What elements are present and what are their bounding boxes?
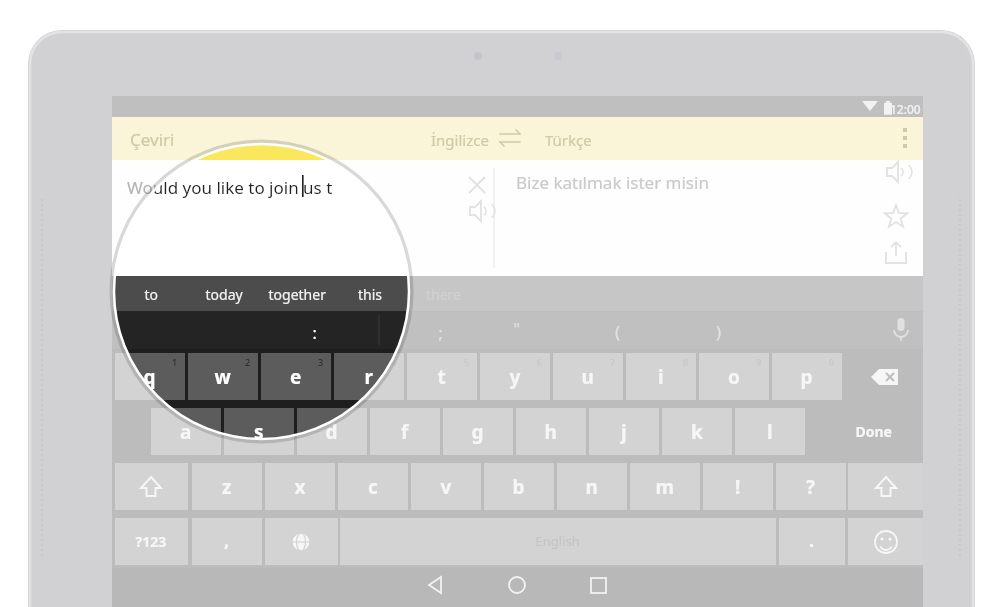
button[interactable]: Voice input (862, 311, 923, 349)
button[interactable]: Çeviri (118, 118, 230, 160)
button[interactable]: Save to phrasebook (877, 198, 917, 236)
button[interactable]: Listen to translation (877, 162, 917, 200)
button[interactable]: Done (825, 408, 923, 455)
button[interactable]: Swap languages (506, 118, 538, 160)
button[interactable]: Share translation (877, 234, 917, 272)
button[interactable]: to (115, 277, 188, 310)
button[interactable]: Home (498, 572, 536, 604)
button[interactable]: Back (416, 572, 454, 604)
button[interactable]: today (188, 277, 261, 310)
button[interactable]: More options (884, 118, 924, 160)
button[interactable]: Target language Turkish (538, 118, 620, 160)
button[interactable]: there (407, 277, 480, 310)
button[interactable]: Source language English (420, 118, 506, 160)
button[interactable]: Shift (848, 463, 923, 510)
button[interactable]: Emoji (848, 518, 923, 565)
button[interactable]: Listen to source text (459, 204, 497, 242)
button[interactable]: Shift (115, 463, 188, 510)
button[interactable]: Symbols (115, 518, 188, 565)
button[interactable]: Clear text (459, 166, 497, 204)
button[interactable]: Backspace (848, 353, 923, 400)
button[interactable]: Change keyboard language (265, 518, 338, 565)
button[interactable]: this (334, 277, 407, 310)
button[interactable]: Recent apps (580, 572, 618, 604)
button[interactable]: together (261, 277, 334, 310)
